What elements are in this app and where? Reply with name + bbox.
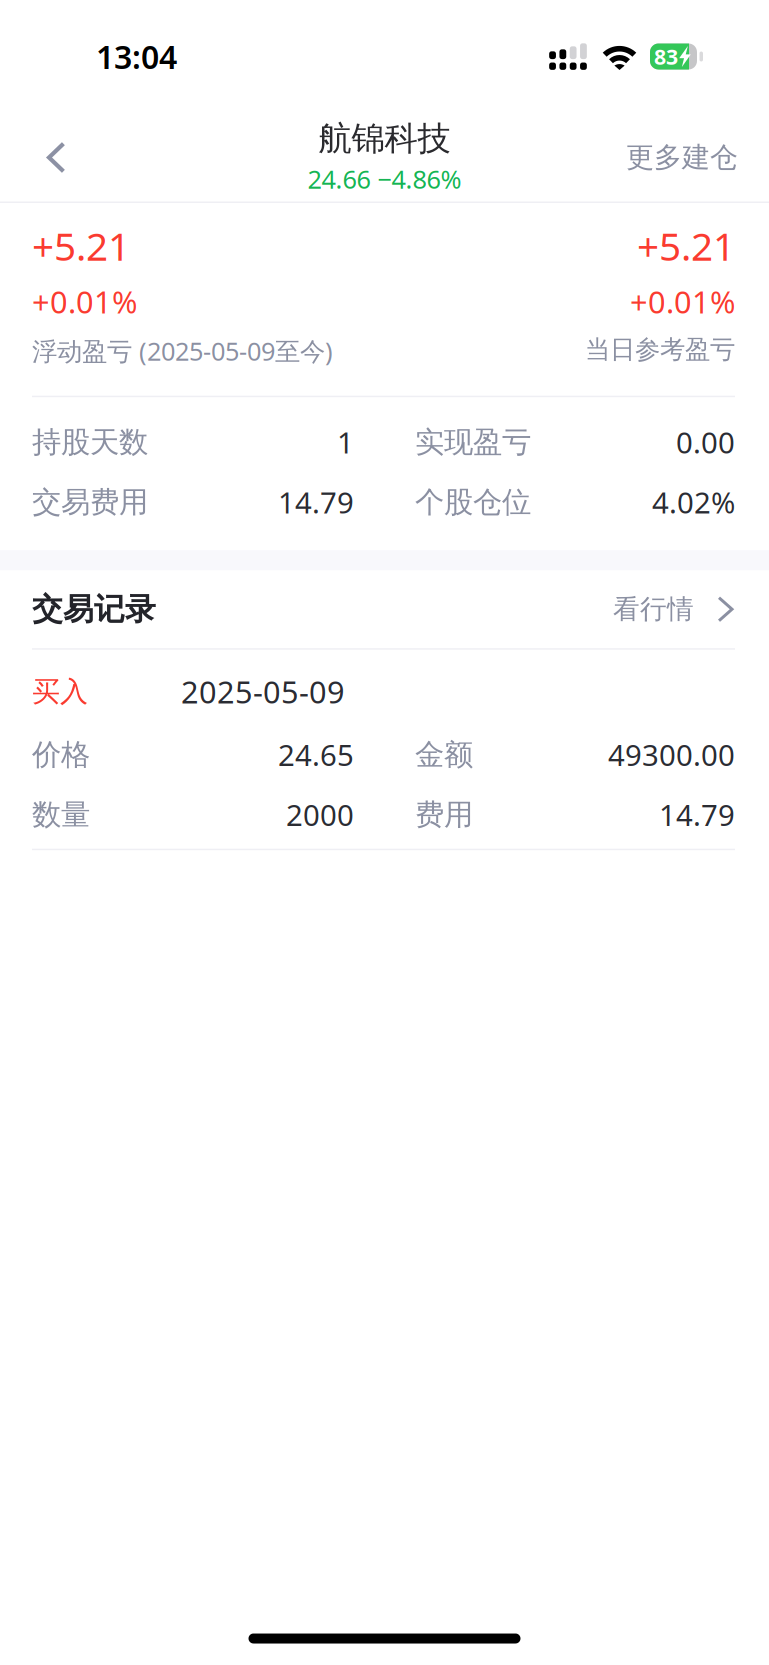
staticText: 浮动盈亏 (2025-05-09至今) [32,334,333,368]
staticText: 14.79 [278,483,354,522]
staticText: 买入 [32,674,88,709]
staticText: 更多建仓 [626,140,738,175]
staticText: +5.21 [32,220,130,271]
staticText: 航锦科技 [318,118,450,159]
staticText: 49300.00 [608,735,735,774]
staticText: 数量 [32,797,90,833]
staticText: 24.65 [278,735,354,774]
staticText: 交易费用 [32,484,148,520]
staticText: 当日参考盈亏 [585,334,735,365]
staticText: 价格 [32,737,90,773]
staticText: 交易记录 [32,590,156,628]
staticText: 2025-05-09 [181,671,345,712]
button[interactable]: 更多建仓 [602,110,769,205]
staticText: 金额 [415,737,473,773]
staticText: 实现盈亏 [415,424,531,460]
staticText: 持股天数 [32,424,148,460]
staticText: 2000 [286,795,354,834]
staticText: +5.21 [637,220,735,271]
staticText: 13:04 [96,35,177,78]
staticText: 1 [337,423,354,462]
staticText: 0.00 [676,423,735,462]
button[interactable]: Back [0,110,93,205]
staticText: 14.79 [659,795,735,834]
staticText: 个股仓位 [415,484,531,520]
staticText: +0.01% [630,281,735,322]
staticText: 费用 [415,797,473,833]
staticText: 看行情 [613,593,694,626]
button[interactable]: 看行情 [613,573,732,646]
staticText: 24.66 −4.86% [307,162,461,196]
staticText: 4.02% [652,483,735,522]
staticText: 83 [654,42,678,71]
staticText: +0.01% [32,281,137,322]
